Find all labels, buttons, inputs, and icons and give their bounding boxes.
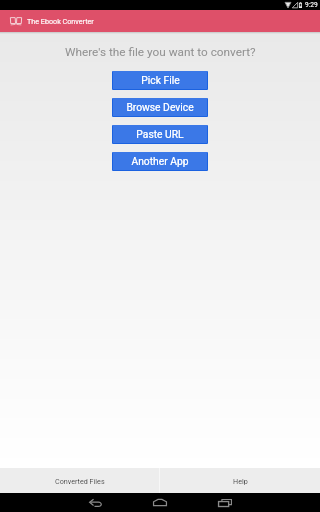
button[interactable]: Help: [160, 468, 320, 493]
button[interactable]: Home: [148, 495, 172, 510]
staticText: 9:29: [305, 1, 318, 9]
staticText: Pick File: [141, 74, 180, 86]
staticText: Where's the file you want to convert?: [65, 45, 256, 59]
staticText: Browse Device: [126, 101, 194, 113]
staticText: Converted Files: [55, 477, 105, 485]
button[interactable]: Paste URL: [113, 125, 207, 143]
button[interactable]: Converted Files: [0, 468, 159, 493]
button[interactable]: Pick File: [113, 71, 207, 89]
button[interactable]: Browse Device: [113, 98, 207, 116]
button[interactable]: Another App: [113, 152, 207, 170]
staticText: Help: [233, 477, 248, 485]
other: App icon: [10, 17, 22, 25]
button[interactable]: Recent apps: [213, 495, 237, 510]
staticText: Another App: [131, 155, 189, 167]
button[interactable]: Back: [83, 495, 107, 510]
staticText: The Ebook Converter: [27, 17, 94, 25]
staticText: Paste URL: [136, 128, 184, 140]
